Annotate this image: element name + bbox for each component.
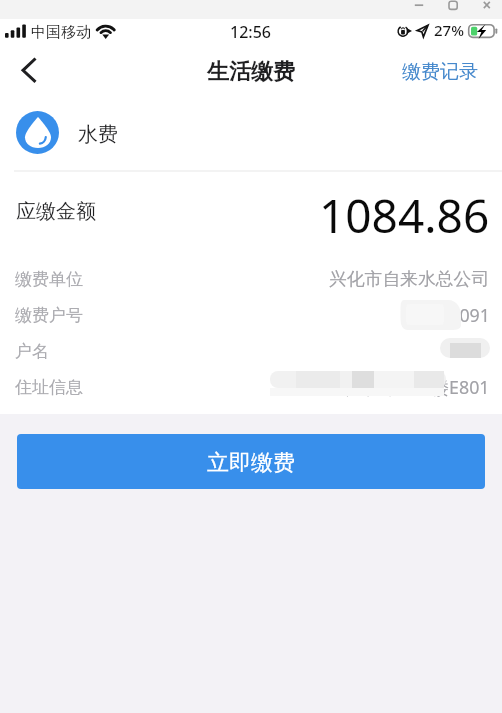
staticText: 27%: [434, 20, 464, 40]
staticText: 立即缴费: [207, 449, 295, 477]
staticText: 户名: [15, 341, 49, 362]
staticText: 住址信息: [15, 377, 83, 398]
button[interactable]: 缴费记录: [402, 60, 478, 84]
staticText: 生活缴费: [207, 58, 295, 86]
staticText: 缴费单位: [15, 269, 83, 290]
staticText: 1084.86: [319, 184, 490, 247]
staticText: 兴化市…号楼E801: [346, 375, 490, 399]
staticText: 12:56: [230, 21, 271, 43]
button[interactable]: 立即缴费: [17, 434, 485, 489]
staticText: 中国移动: [31, 23, 91, 42]
staticText: 水费: [78, 122, 118, 147]
staticText: 缴费记录: [402, 60, 478, 84]
staticText: 应缴金额: [16, 199, 96, 224]
button[interactable]: Back: [0, 44, 52, 95]
staticText: 缴费户号: [15, 305, 83, 326]
staticText: 兴化市自来水总公司: [329, 268, 490, 290]
staticText: 08…091: [425, 303, 490, 327]
